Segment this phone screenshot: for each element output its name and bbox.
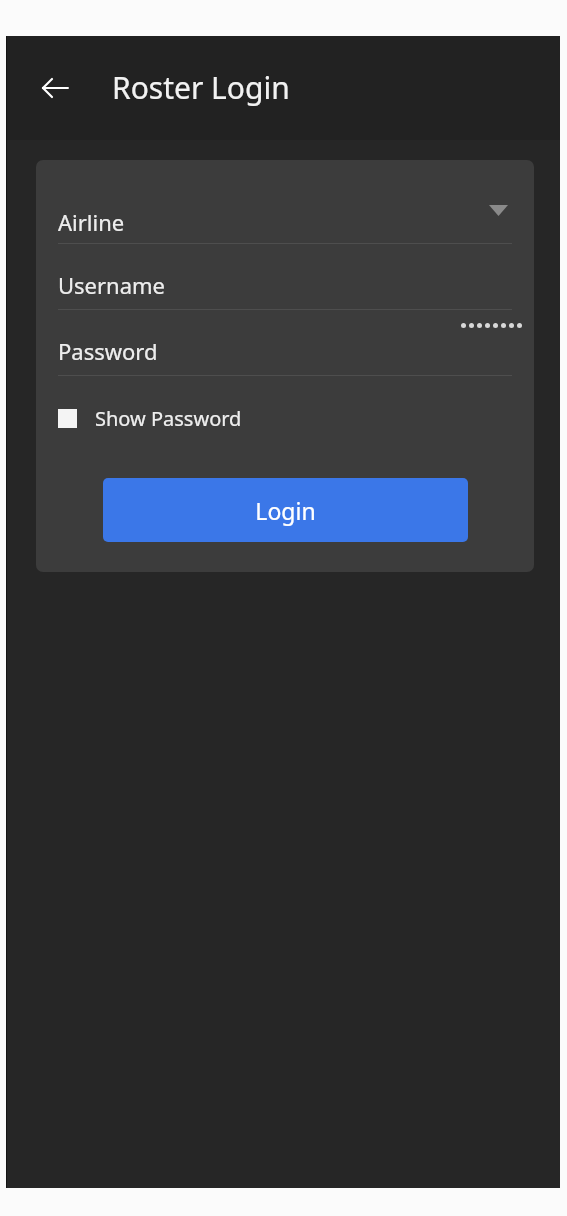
- button[interactable]: Back: [31, 64, 79, 112]
- staticText: Roster Login: [112, 67, 290, 108]
- button[interactable]: Select airline: [476, 188, 520, 232]
- button[interactable]: Login: [103, 478, 468, 542]
- staticText: Username: [58, 270, 166, 300]
- staticText: Password: [58, 336, 158, 366]
- button[interactable]: Username: [36, 261, 534, 309]
- staticText: Login: [255, 495, 316, 526]
- button[interactable]: Show Password: [58, 398, 254, 438]
- staticText: Airline: [58, 207, 125, 237]
- staticText: Show Password: [95, 405, 242, 432]
- button[interactable]: Airline: [36, 198, 534, 246]
- button[interactable]: Password: [36, 327, 534, 375]
